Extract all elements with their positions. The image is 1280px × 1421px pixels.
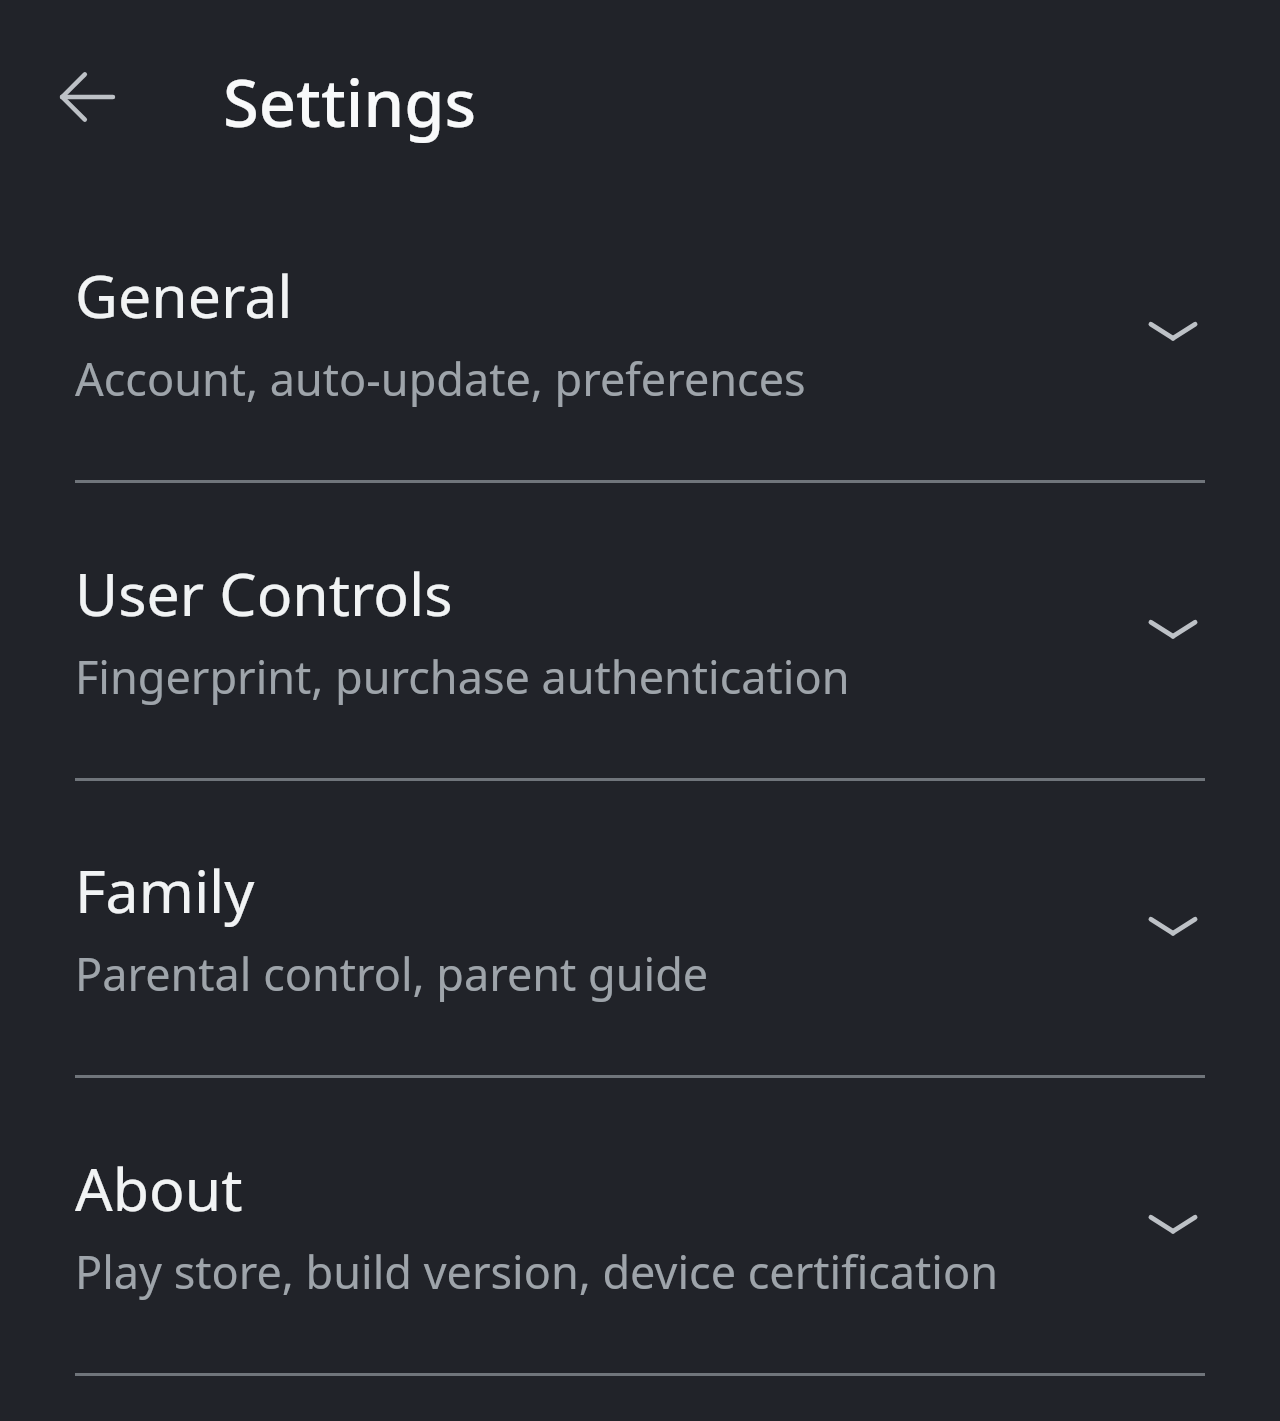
staticText: User Controls (75, 553, 453, 633)
button[interactable]: Back (27, 37, 147, 157)
staticText: Play store, build version, device certif… (75, 1241, 998, 1302)
button[interactable]: Expand About (1125, 1177, 1221, 1273)
button[interactable]: Expand General (1125, 284, 1221, 380)
button[interactable]: Expand Family (1125, 879, 1221, 975)
staticText: Account, auto-update, preferences (75, 348, 806, 409)
staticText: Settings (223, 58, 477, 147)
button[interactable]: Family (0, 778, 1280, 1075)
staticText: General (75, 255, 293, 335)
button[interactable]: Expand User Controls (1125, 582, 1221, 678)
staticText: Fingerprint, purchase authentication (75, 646, 850, 707)
button[interactable]: User Controls (0, 481, 1280, 778)
button[interactable]: About (0, 1076, 1280, 1373)
staticText: About (75, 1148, 243, 1228)
button[interactable]: General (0, 183, 1280, 480)
staticText: Parental control, parent guide (75, 943, 709, 1004)
staticText: Family (75, 850, 255, 930)
